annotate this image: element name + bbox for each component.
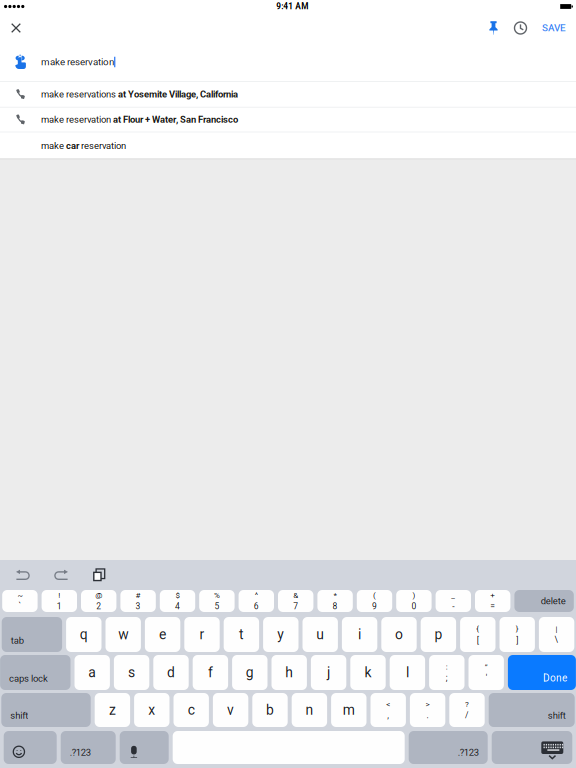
button[interactable]: tab [2,617,62,652]
staticText: ! [58,591,60,600]
button[interactable]: $ [160,590,195,612]
button[interactable]: e [145,617,180,652]
button[interactable]: delete [514,590,574,612]
button[interactable]: s [114,655,149,690]
button[interactable]: Pin [480,13,507,43]
button[interactable]: x [134,693,169,727]
button[interactable]: Close [0,13,32,43]
button[interactable]: @ [81,590,116,612]
button[interactable]: t [224,617,259,652]
button[interactable]: n [292,693,327,727]
button[interactable]: q [66,617,101,652]
button[interactable]: * [317,590,353,612]
button[interactable]: SAVE [534,13,574,43]
button[interactable]: : [429,655,464,690]
staticText: 9:41 AM [276,2,308,11]
button[interactable]: y [263,617,298,652]
button[interactable]: shift [1,693,91,727]
button[interactable]: Paste [80,561,118,589]
button[interactable]: r [184,617,220,652]
button[interactable]: v [213,693,248,727]
button[interactable]: .?123 [409,731,488,764]
staticText: d [167,664,175,681]
staticText: [ [477,635,479,645]
staticText: i [358,626,361,643]
button[interactable]: i [342,617,377,652]
staticText: Done [543,672,567,684]
staticText: ) [412,591,415,600]
button[interactable] [4,731,57,764]
staticText: shift [548,710,566,721]
button[interactable]: c [173,693,209,727]
button[interactable]: ” [468,655,504,690]
button[interactable]: a [74,655,110,690]
button[interactable]: u [302,617,338,652]
staticText: 9 [372,601,377,611]
button[interactable]: b [252,693,288,727]
button[interactable]: ? [449,693,485,727]
button[interactable]: o [381,617,417,652]
button[interactable]: .?123 [61,731,116,764]
button[interactable]: } [499,617,535,652]
staticText: tab [11,635,24,646]
button[interactable]: make car reservation [0,132,576,159]
staticText: ^ [255,591,258,600]
button[interactable]: % [199,590,235,612]
staticText: p [434,626,442,643]
button[interactable]: Recent searches [507,13,534,43]
button[interactable]: j [311,655,346,690]
staticText: _ [451,591,455,600]
button[interactable]: ~ [2,590,38,612]
button[interactable]: Redo [42,561,80,589]
button[interactable]: f [193,655,228,690]
button[interactable]: _ [436,590,471,612]
staticText: make reservation [41,56,114,68]
staticText: : [446,662,448,671]
button[interactable]: < [370,693,406,727]
staticText: . [427,710,429,720]
button[interactable]: { [460,617,495,652]
button[interactable]: z [95,693,130,727]
button[interactable]: g [232,655,267,690]
staticText: v [227,702,234,718]
staticText: a [88,664,96,681]
button[interactable]: + [475,590,510,612]
staticText: 1 [57,601,62,611]
staticText: ? [465,700,469,709]
button[interactable]: ! [42,590,77,612]
button[interactable]: l [390,655,425,690]
staticText: @ [95,591,102,600]
button[interactable]: & [278,590,313,612]
button[interactable]: make reservation [0,43,576,81]
button[interactable]: m [331,693,366,727]
button[interactable]: h [271,655,307,690]
staticText: n [305,702,313,718]
button[interactable]: caps lock [0,655,70,690]
button[interactable]: > [410,693,445,727]
button[interactable]: make reservation at Flour + Water, San F… [0,108,576,132]
staticText: & [293,591,298,600]
button[interactable] [120,731,169,764]
button[interactable]: ) [396,590,432,612]
button[interactable]: d [153,655,189,690]
staticText: g [246,664,254,681]
staticText: 5 [214,601,219,611]
staticText: shift [10,710,28,721]
staticText: h [285,664,293,681]
button[interactable]: ^ [239,590,274,612]
button[interactable]: w [105,617,141,652]
button[interactable]: ( [357,590,392,612]
staticText: } [516,624,519,633]
staticText: m [343,702,355,718]
button[interactable]: Done [508,655,576,690]
button[interactable]: Undo [4,561,42,589]
button[interactable]: k [350,655,386,690]
button[interactable]: p [421,617,456,652]
button[interactable] [492,731,572,764]
button[interactable]: shift [489,693,575,727]
button[interactable]: # [120,590,156,612]
staticText: ( [373,591,376,600]
button[interactable]: | [539,617,574,652]
button[interactable]: make reservations at Yosemite Village, C… [0,82,576,107]
